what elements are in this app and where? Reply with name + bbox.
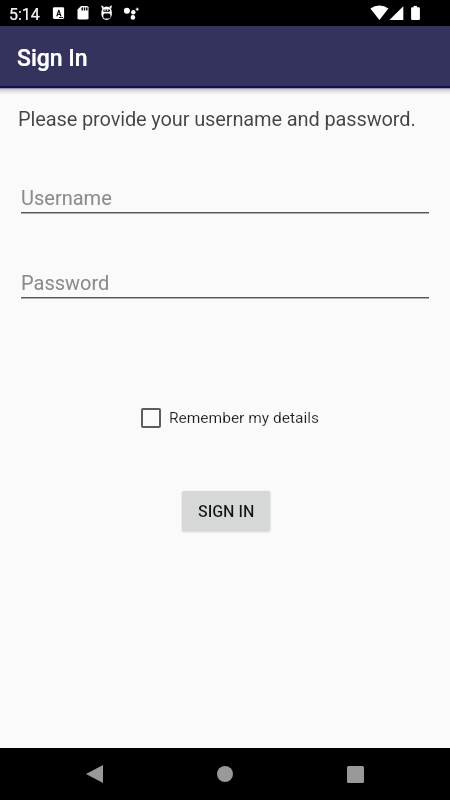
staticText: Please provide your username and passwor… — [18, 107, 416, 130]
staticText: 5:14 — [9, 5, 40, 24]
button[interactable]: SIGN IN — [182, 491, 270, 531]
button[interactable]: Back — [70, 750, 118, 798]
button[interactable]: Remember my details — [141, 408, 319, 428]
button[interactable]: Home — [201, 750, 249, 798]
button[interactable]: Password — [21, 271, 429, 299]
button[interactable]: Recent apps — [331, 750, 379, 798]
staticText: Sign In — [17, 45, 88, 72]
staticText: SIGN IN — [198, 502, 255, 521]
staticText: Username — [21, 186, 112, 209]
button[interactable]: Username — [21, 186, 429, 214]
staticText: Remember my details — [169, 409, 319, 427]
staticText: Password — [21, 271, 110, 294]
